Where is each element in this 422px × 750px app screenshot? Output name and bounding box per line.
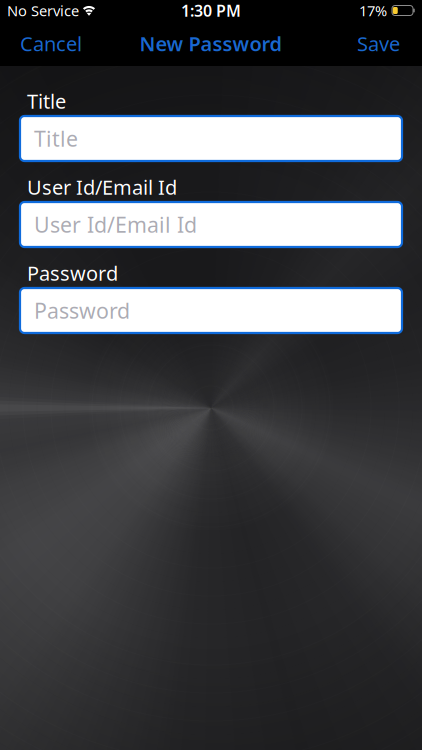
button[interactable]: Title [20, 116, 402, 161]
staticText: 1:30 PM [181, 0, 241, 21]
button[interactable]: User Id/Email Id [20, 202, 402, 247]
staticText: Cancel [20, 30, 82, 57]
staticText: 17% [359, 1, 387, 20]
staticText: No Service [7, 1, 79, 20]
staticText: Save [357, 30, 400, 57]
staticText: User Id/Email Id [27, 174, 177, 200]
staticText: Title [27, 88, 66, 114]
button[interactable]: Password [20, 288, 402, 333]
staticText: New Password [139, 30, 282, 57]
staticText: Password [34, 296, 130, 325]
button[interactable]: Cancel [20, 30, 82, 57]
staticText: User Id/Email Id [34, 210, 197, 239]
staticText: Title [34, 124, 78, 153]
staticText: Password [27, 260, 118, 286]
button[interactable]: Save [357, 30, 400, 57]
